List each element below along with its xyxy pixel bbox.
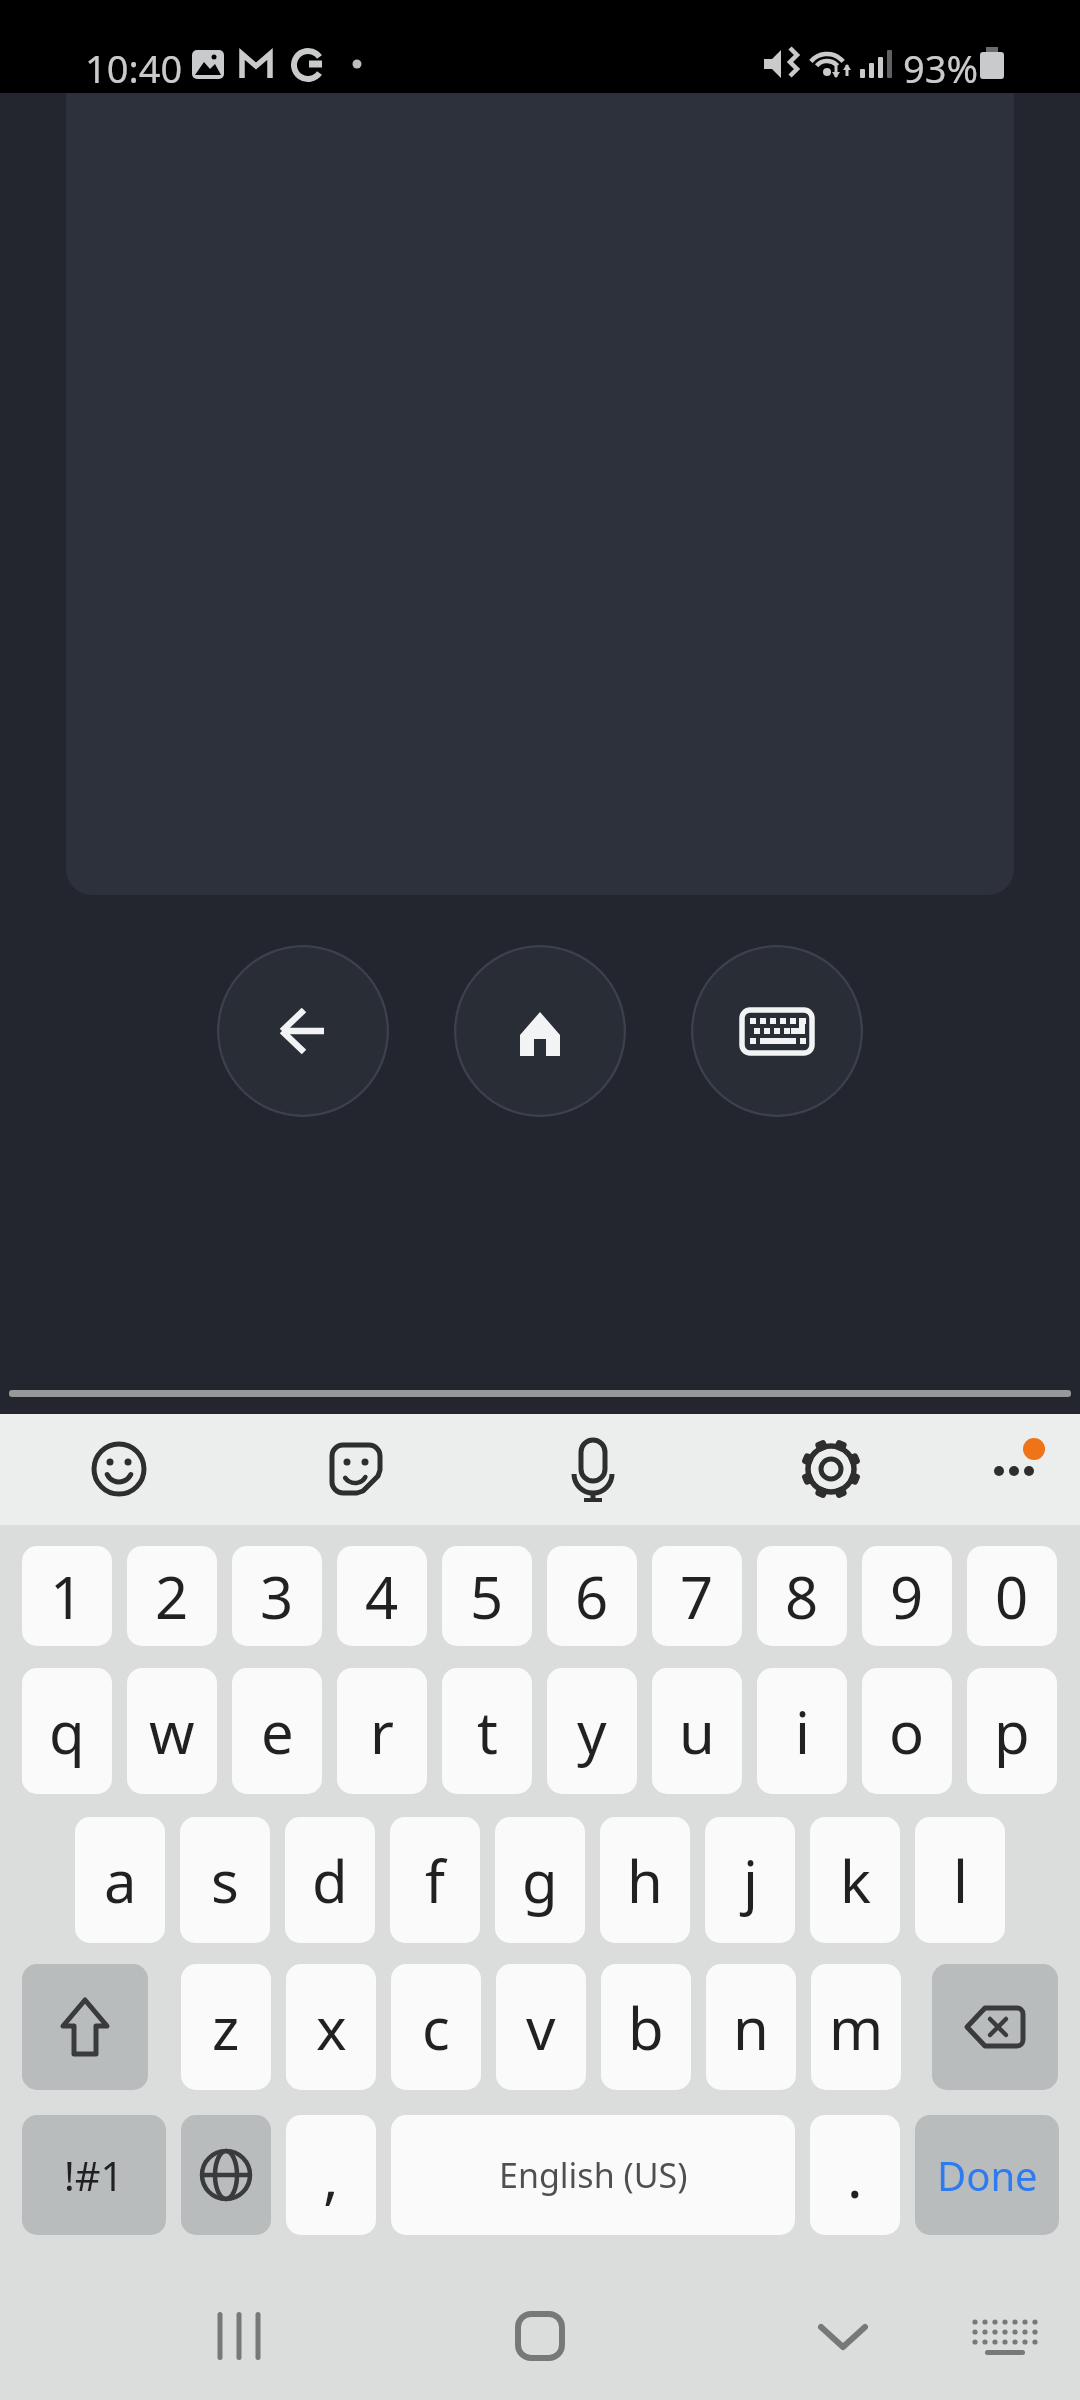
button[interactable]: a xyxy=(75,1817,165,1943)
staticText: j xyxy=(743,1841,758,1920)
button[interactable]: y xyxy=(547,1668,637,1794)
staticText: y xyxy=(577,1692,607,1771)
staticText: x xyxy=(316,1988,347,2067)
button[interactable]: 4 xyxy=(337,1546,427,1646)
button[interactable]: 9 xyxy=(862,1546,952,1646)
button[interactable]: g xyxy=(495,1817,585,1943)
button[interactable]: c xyxy=(391,1964,481,2090)
button[interactable] xyxy=(965,1419,1055,1509)
staticText: 5 xyxy=(470,1557,504,1636)
staticText: 4 xyxy=(365,1557,399,1636)
staticText: 10:40 xyxy=(85,42,183,94)
staticText: 93% xyxy=(903,42,979,94)
staticText: f xyxy=(425,1841,445,1920)
button[interactable] xyxy=(505,2310,575,2362)
button[interactable] xyxy=(311,1424,401,1514)
button[interactable] xyxy=(786,1424,876,1514)
button[interactable]: 7 xyxy=(652,1546,742,1646)
staticText: a xyxy=(104,1841,137,1920)
button[interactable]: !#1 xyxy=(22,2115,166,2235)
staticText: o xyxy=(889,1692,925,1771)
button[interactable]: j xyxy=(705,1817,795,1943)
staticText: d xyxy=(312,1841,348,1920)
staticText: 6 xyxy=(575,1557,609,1636)
staticText: w xyxy=(149,1692,195,1771)
button[interactable]: 2 xyxy=(127,1546,217,1646)
staticText: b xyxy=(628,1988,664,2067)
button[interactable] xyxy=(217,945,389,1117)
staticText: s xyxy=(211,1841,239,1920)
button[interactable]: 8 xyxy=(757,1546,847,1646)
staticText: m xyxy=(829,1988,884,2067)
staticText: k xyxy=(840,1841,871,1920)
staticText: English (US) xyxy=(499,2152,688,2198)
staticText: p xyxy=(994,1692,1030,1771)
button[interactable] xyxy=(970,2310,1040,2362)
staticText: n xyxy=(733,1988,769,2067)
button[interactable]: z xyxy=(181,1964,271,2090)
staticText: !#1 xyxy=(64,2148,124,2202)
button[interactable] xyxy=(22,1964,148,2090)
button[interactable]: r xyxy=(337,1668,427,1794)
staticText: . xyxy=(847,2136,863,2215)
staticText: c xyxy=(422,1988,450,2067)
staticText: 2 xyxy=(155,1557,189,1636)
button[interactable]: d xyxy=(285,1817,375,1943)
button[interactable]: v xyxy=(496,1964,586,2090)
button[interactable] xyxy=(808,2310,878,2362)
staticText: 8 xyxy=(785,1557,819,1636)
staticText: v xyxy=(526,1988,556,2067)
button[interactable]: o xyxy=(862,1668,952,1794)
button[interactable] xyxy=(932,1964,1058,2090)
button[interactable]: English (US) xyxy=(391,2115,795,2235)
button[interactable] xyxy=(454,945,626,1117)
button[interactable] xyxy=(74,1424,164,1514)
staticText: h xyxy=(627,1841,663,1920)
button[interactable]: s xyxy=(180,1817,270,1943)
button[interactable]: 6 xyxy=(547,1546,637,1646)
button[interactable]: 0 xyxy=(967,1546,1057,1646)
staticText: z xyxy=(212,1988,240,2067)
button[interactable]: h xyxy=(600,1817,690,1943)
button[interactable]: q xyxy=(22,1668,112,1794)
button[interactable]: m xyxy=(811,1964,901,2090)
staticText: 9 xyxy=(890,1557,924,1636)
staticText: 7 xyxy=(680,1557,714,1636)
button[interactable]: . xyxy=(810,2115,900,2235)
button[interactable]: u xyxy=(652,1668,742,1794)
staticText: , xyxy=(323,2136,339,2215)
staticText: 3 xyxy=(260,1557,294,1636)
staticText: u xyxy=(679,1692,715,1771)
button[interactable]: l xyxy=(915,1817,1005,1943)
button[interactable]: Done xyxy=(915,2115,1059,2235)
button[interactable]: f xyxy=(390,1817,480,1943)
button[interactable] xyxy=(204,2310,274,2362)
staticText: i xyxy=(795,1692,810,1771)
button[interactable] xyxy=(691,945,863,1117)
button[interactable]: n xyxy=(706,1964,796,2090)
staticText: q xyxy=(49,1692,85,1771)
button[interactable]: w xyxy=(127,1668,217,1794)
staticText: e xyxy=(261,1692,294,1771)
button[interactable]: e xyxy=(232,1668,322,1794)
staticText: l xyxy=(953,1841,968,1920)
button[interactable] xyxy=(548,1424,638,1514)
staticText: g xyxy=(522,1841,558,1920)
staticText: 1 xyxy=(50,1557,84,1636)
staticText: r xyxy=(370,1692,394,1771)
button[interactable]: , xyxy=(286,2115,376,2235)
button[interactable]: 5 xyxy=(442,1546,532,1646)
button[interactable]: 3 xyxy=(232,1546,322,1646)
staticText: 0 xyxy=(995,1557,1029,1636)
button[interactable]: t xyxy=(442,1668,532,1794)
button[interactable]: b xyxy=(601,1964,691,2090)
button[interactable]: i xyxy=(757,1668,847,1794)
button[interactable]: k xyxy=(810,1817,900,1943)
button[interactable]: 1 xyxy=(22,1546,112,1646)
button[interactable] xyxy=(181,2115,271,2235)
staticText: t xyxy=(477,1692,498,1771)
staticText: Done xyxy=(937,2148,1038,2202)
button[interactable]: x xyxy=(286,1964,376,2090)
button[interactable]: p xyxy=(967,1668,1057,1794)
